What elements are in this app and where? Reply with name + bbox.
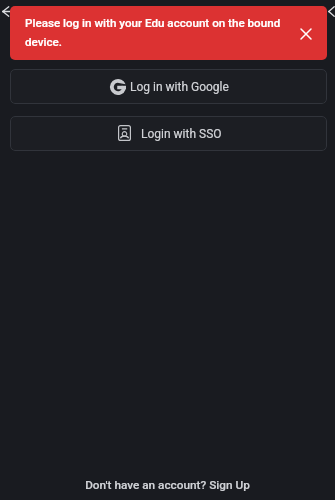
- button[interactable]: Dismiss: [296, 24, 316, 44]
- staticText: Login with SSO: [141, 127, 222, 141]
- button[interactable]: Back: [0, 0, 20, 23]
- button[interactable]: Login with SSO: [10, 116, 327, 151]
- button[interactable]: Previous: [319, 0, 335, 23]
- staticText: Log in with Google: [130, 80, 229, 94]
- button[interactable]: Please log in with your Edu account on t…: [10, 6, 327, 60]
- button[interactable]: Don't have an account? Sign Up: [73, 474, 262, 496]
- button[interactable]: Log in with Google: [10, 69, 327, 104]
- staticText: Please log in with your Edu account on t…: [25, 16, 295, 49]
- staticText: Don't have an account? Sign Up: [85, 478, 250, 492]
